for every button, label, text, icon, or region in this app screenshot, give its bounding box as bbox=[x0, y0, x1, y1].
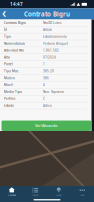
button[interactable]: Back bbox=[0, 8, 12, 19]
staticText: Artaza bbox=[43, 28, 52, 32]
staticText: Estado bbox=[4, 103, 14, 108]
staticText: Nva. Tapiceria bbox=[43, 90, 64, 94]
staticText: 385.20 bbox=[43, 69, 54, 73]
staticText: 4 bbox=[43, 83, 45, 87]
staticText: Campos bbox=[8, 193, 16, 196]
staticText: Medio Tipo bbox=[4, 90, 22, 94]
staticText: Ver Ubicación bbox=[35, 123, 57, 128]
staticText: Tareas bbox=[32, 193, 38, 196]
staticText: Más bbox=[80, 193, 84, 196]
staticText: C bbox=[43, 97, 45, 101]
button[interactable]: Más bbox=[70, 186, 94, 197]
staticText: Motivo bbox=[4, 76, 15, 80]
staticText: Establecimiento bbox=[43, 34, 67, 39]
staticText: Parcel bbox=[4, 62, 13, 66]
staticText: Contrato Bigru bbox=[4, 21, 26, 25]
staticText: Nomenclatura bbox=[4, 41, 25, 46]
staticText: Perfiles bbox=[4, 97, 15, 101]
staticText: 1.861.582 bbox=[43, 48, 59, 52]
staticText: Activo bbox=[43, 103, 52, 108]
button[interactable]: Tareas bbox=[23, 186, 47, 197]
staticText: Tipo bbox=[4, 34, 11, 39]
staticText: Id bbox=[4, 28, 7, 32]
staticText: Nro/ID Lotes bbox=[43, 21, 61, 25]
staticText: Tipo Mat. bbox=[4, 69, 19, 73]
button[interactable]: Ver Ubicación bbox=[1, 120, 91, 131]
staticText: Alta bbox=[4, 55, 10, 59]
staticText: 14:47 bbox=[10, 1, 23, 7]
staticText: Contrato Bigru bbox=[24, 10, 70, 18]
staticText: Movil bbox=[4, 83, 13, 87]
staticText: Mapa bbox=[56, 193, 61, 196]
button[interactable]: Campos bbox=[0, 186, 23, 197]
staticText: 386 bbox=[43, 76, 49, 80]
button[interactable]: Mapa bbox=[47, 186, 70, 197]
staticText: 07/2024 bbox=[43, 55, 56, 59]
staticText: 1 bbox=[43, 62, 45, 66]
staticText: Actividad Nro bbox=[4, 48, 24, 52]
staticText: Yerbero Bloquet bbox=[43, 41, 68, 46]
